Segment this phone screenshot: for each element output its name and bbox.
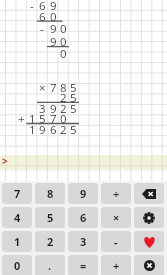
staticText: 8 (60, 80, 67, 93)
staticText: 0 (60, 34, 67, 47)
staticText: 9 (50, 34, 57, 47)
staticText: + (18, 111, 25, 124)
staticText: 5 (47, 210, 54, 225)
staticText: 5 (70, 90, 77, 103)
staticText: 5 (70, 122, 77, 135)
staticText: 9 (39, 122, 46, 135)
button[interactable] (134, 207, 164, 228)
button[interactable]: 1 (2, 231, 32, 252)
staticText: × (113, 210, 120, 225)
button[interactable]: 6 (68, 207, 98, 228)
staticText: 8 (47, 186, 54, 201)
staticText: 9 (50, 101, 57, 114)
staticText: 0 (50, 9, 57, 22)
staticText: 6 (39, 9, 46, 22)
staticText: - (30, 0, 34, 11)
staticText: 3 (80, 234, 87, 249)
button[interactable]: . (35, 255, 65, 275)
staticText: 1 (14, 234, 21, 249)
staticText: 5 (70, 80, 77, 93)
staticText: - (40, 21, 44, 34)
button[interactable]: + (101, 255, 131, 275)
staticText: 1 (29, 122, 36, 135)
staticText: 0 (60, 111, 67, 124)
button[interactable]: 5 (35, 207, 65, 228)
staticText: 2 (47, 234, 54, 249)
staticText: 5 (39, 111, 46, 124)
button[interactable]: ÷ (101, 183, 131, 204)
button[interactable]: 3 (68, 231, 98, 252)
staticText: 9 (80, 186, 87, 201)
button[interactable] (134, 255, 164, 275)
staticText: + (113, 258, 120, 273)
button[interactable]: 0 (2, 255, 32, 275)
staticText: 9 (50, 0, 57, 11)
staticText: 6 (80, 210, 87, 225)
staticText: 4 (14, 210, 21, 225)
staticText: 9 (50, 21, 57, 34)
staticText: = (80, 258, 87, 273)
staticText: 0 (60, 21, 67, 34)
staticText: - (114, 234, 118, 249)
staticText: 7 (50, 80, 57, 93)
staticText: 2 (60, 101, 67, 114)
staticText: ÷ (113, 186, 120, 201)
button[interactable]: 7 (2, 183, 32, 204)
staticText: 5 (70, 101, 77, 114)
button[interactable]: × (101, 207, 131, 228)
button[interactable] (134, 231, 164, 252)
staticText: 1 (29, 111, 36, 124)
staticText: 0 (60, 46, 67, 59)
staticText: 7 (50, 111, 57, 124)
staticText: 7 (14, 186, 21, 201)
staticText: > (2, 154, 8, 167)
button[interactable]: 9 (68, 183, 98, 204)
staticText: × (39, 80, 46, 93)
staticText: 6 (50, 122, 57, 135)
button[interactable]: 2 (35, 231, 65, 252)
staticText: 0 (14, 258, 21, 273)
staticText: 2 (60, 90, 67, 103)
button[interactable]: 8 (35, 183, 65, 204)
staticText: 2 (60, 122, 67, 135)
button[interactable] (134, 183, 164, 204)
staticText: 6 (39, 0, 46, 11)
staticText: 3 (39, 101, 46, 114)
staticText: . (48, 258, 52, 273)
button[interactable]: = (68, 255, 98, 275)
button[interactable]: - (101, 231, 131, 252)
button[interactable]: 4 (2, 207, 32, 228)
